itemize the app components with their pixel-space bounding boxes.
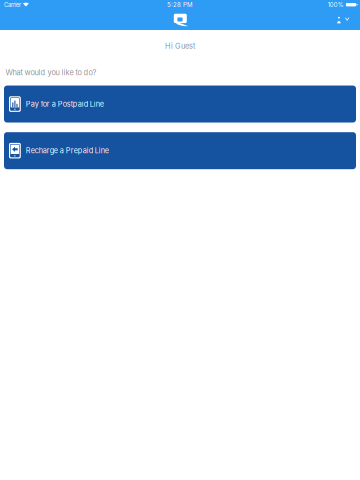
staticText: Carrier	[4, 1, 21, 8]
button[interactable]: Pay for a Postpaid Line	[4, 86, 356, 123]
staticText: Recharge a Prepaid Line	[26, 146, 109, 155]
staticText: Hi Guest	[165, 41, 195, 50]
staticText: 100%	[328, 1, 344, 8]
staticText: Pay for a Postpaid Line	[26, 100, 104, 108]
staticText: What would you like to do?	[6, 68, 97, 77]
staticText: 5:28 PM	[167, 1, 193, 8]
button[interactable]: Account	[332, 9, 360, 30]
button[interactable]: Recharge a Prepaid Line	[4, 132, 356, 169]
